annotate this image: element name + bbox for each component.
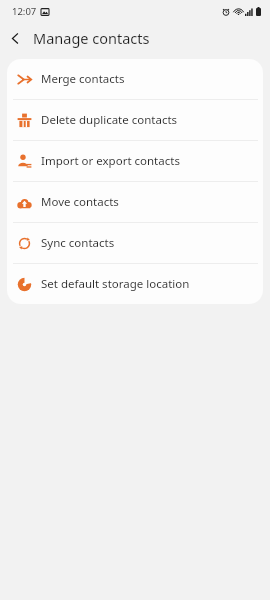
button[interactable]: Delete duplicate contacts [7, 100, 263, 140]
button[interactable]: Sync contacts [7, 223, 263, 263]
button[interactable]: Back [0, 23, 30, 53]
button[interactable]: Import or export contacts [7, 141, 263, 181]
staticText: 12:07 [12, 5, 37, 18]
staticText: Import or export contacts [41, 153, 180, 169]
staticText: Merge contacts [41, 71, 125, 87]
staticText: Move contacts [41, 194, 119, 210]
staticText: Manage contacts [33, 28, 150, 48]
button[interactable]: Move contacts [7, 182, 263, 222]
staticText: Set default storage location [41, 276, 190, 292]
staticText: Delete duplicate contacts [41, 112, 178, 128]
button[interactable]: Merge contacts [7, 59, 263, 99]
button[interactable]: Set default storage location [7, 264, 263, 304]
staticText: Sync contacts [41, 235, 115, 251]
